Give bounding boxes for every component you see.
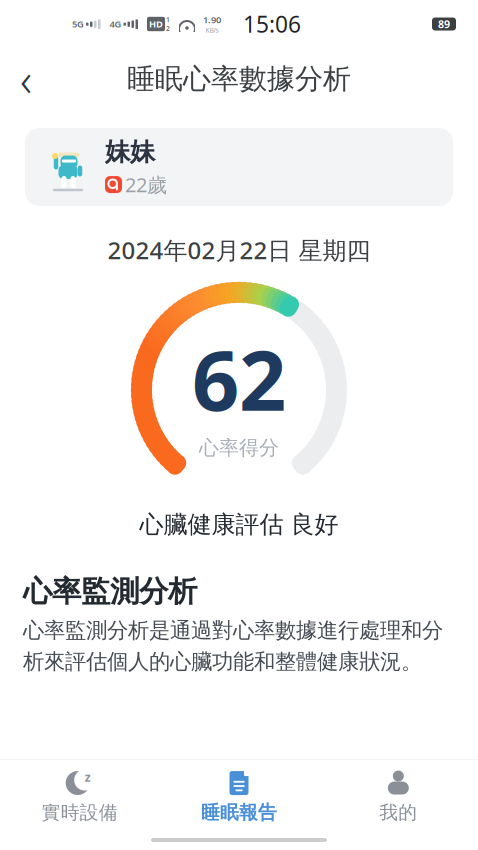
staticText: 睡眠心率數據分析 [127,62,351,96]
staticText: ‹ [20,49,32,109]
staticText: 1 [166,15,170,24]
staticText: 心率監測分析是通過對心率數據進行處理和分析來評估個人的心臟功能和整體健康狀況。 [23,617,443,675]
staticText: 實時設備 [42,801,118,824]
staticText: 心臟健康評估 良好 [139,510,338,539]
button[interactable]: 睡眠報告 [159,766,319,828]
staticText: 我的 [379,801,417,824]
staticText: 4G [109,18,121,30]
button[interactable]: z [0,766,159,828]
staticText: 心率監測分析 [23,573,197,609]
staticText: 1.90 [203,13,221,26]
staticText: 89 [438,17,450,31]
staticText: 妹妹 [105,136,155,167]
staticText: KB/s [205,26,218,35]
button[interactable]: 妹妹 [25,128,453,206]
staticText: 5G [72,18,84,30]
staticText: 睡眠報告 [201,801,277,824]
staticText: 62 [192,324,286,433]
staticText: z [85,769,91,785]
staticText: 2024年02月22日 星期四 [107,234,370,266]
staticText: 心率得分 [199,435,279,460]
button[interactable]: 我的 [319,766,478,828]
staticText: 2 [166,24,170,33]
staticText: 15:06 [243,9,301,39]
staticText: HD [149,18,163,30]
button[interactable]: 返回 [0,53,52,105]
staticText: 22歲 [125,171,167,198]
